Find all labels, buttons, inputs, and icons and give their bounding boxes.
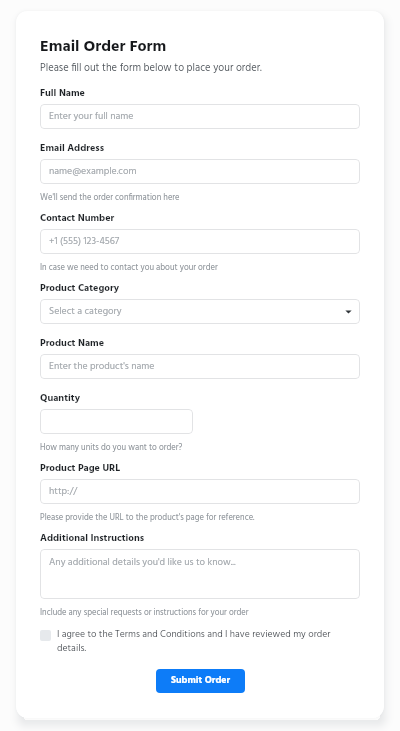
button[interactable]: Enter your full name — [40, 104, 360, 129]
button[interactable]: http:// — [40, 479, 360, 504]
staticText: Enter your full name — [49, 109, 134, 125]
button[interactable]: name@example.com — [40, 159, 360, 184]
button[interactable] — [40, 409, 193, 434]
staticText: How many units do you want to order? — [40, 441, 183, 455]
staticText: name@example.com — [49, 164, 137, 180]
staticText: In case we need to contact you about you… — [40, 261, 218, 275]
button[interactable]: Submit Order — [156, 669, 245, 693]
staticText: I agree to the Terms and Conditions and … — [57, 627, 360, 657]
staticText: Select a category — [49, 304, 122, 320]
staticText: Please fill out the form below to place … — [40, 60, 262, 77]
staticText: Email Address — [40, 140, 105, 156]
staticText: Product Name — [40, 335, 105, 351]
staticText: Product Category — [40, 280, 119, 296]
button[interactable]: Any additional details you'd like us to … — [40, 549, 360, 599]
staticText: Submit Order — [171, 673, 231, 689]
staticText: We'll send the order confirmation here — [40, 191, 180, 205]
staticText: http:// — [49, 484, 78, 500]
staticText: Additional Instructions — [40, 530, 145, 546]
staticText: Please provide the URL to the product's … — [40, 511, 255, 525]
button[interactable]: I agree to the Terms and Conditions and … — [40, 627, 360, 657]
staticText: Any additional details you'd like us to … — [49, 555, 236, 571]
staticText: +1 (555) 123-4567 — [49, 234, 120, 250]
staticText: Full Name — [40, 85, 85, 101]
button[interactable]: +1 (555) 123-4567 — [40, 229, 360, 254]
staticText: Include any special requests or instruct… — [40, 606, 249, 620]
staticText: Product Page URL — [40, 460, 121, 476]
button[interactable]: Enter the product's name — [40, 354, 360, 379]
staticText: Quantity — [40, 390, 80, 406]
staticText: Enter the product's name — [49, 359, 155, 375]
staticText: Contact Number — [40, 210, 115, 226]
button[interactable]: Select a category — [40, 299, 360, 324]
staticText: Email Order Form — [40, 34, 167, 60]
